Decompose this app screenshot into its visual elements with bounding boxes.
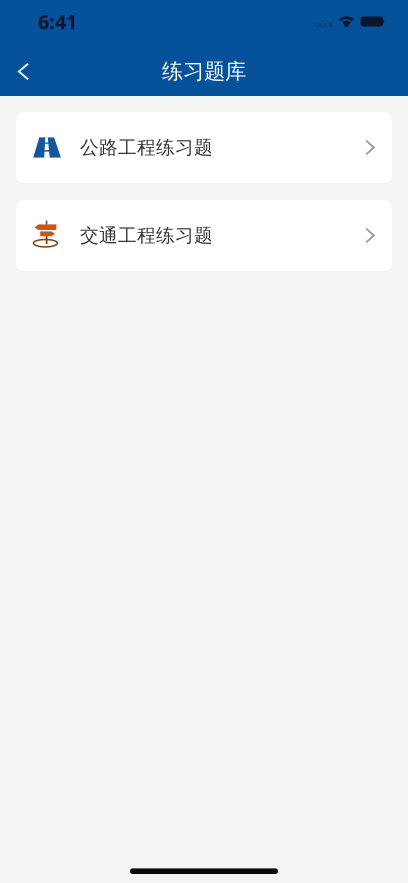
staticText: 交通工程练习题 [80,224,213,247]
staticText: 练习题库 [162,58,246,85]
button[interactable]: 交通工程练习题 [16,200,392,271]
staticText: 6:41 [38,8,77,35]
staticText: 公路工程练习题 [80,136,213,159]
button[interactable]: Back [0,49,44,93]
button[interactable]: 公路工程练习题 [16,112,392,183]
